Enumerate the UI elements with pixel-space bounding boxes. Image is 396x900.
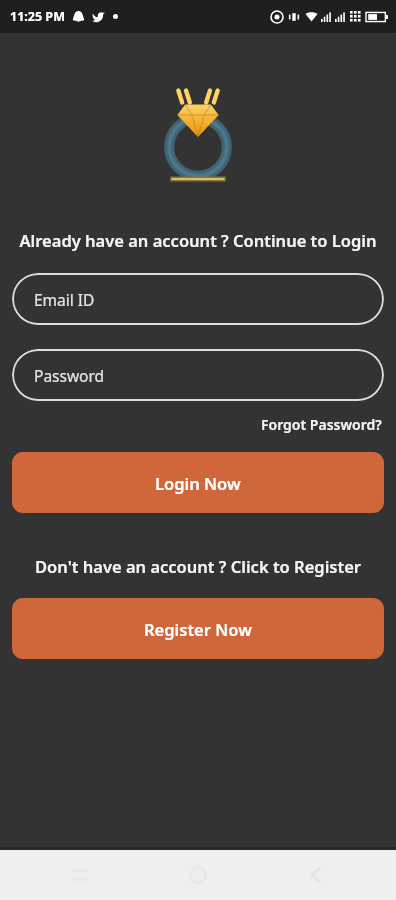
button[interactable]: Login Now: [12, 452, 384, 513]
staticText: Forgot Password?: [261, 415, 382, 434]
staticText: Password: [34, 365, 105, 386]
staticText: Already have an account ? Continue to Lo…: [8, 229, 388, 251]
staticText: Login Now: [155, 472, 241, 494]
button[interactable]: Forgot Password?: [259, 413, 384, 436]
staticText: Register Now: [144, 618, 252, 640]
button[interactable]: Register Now: [12, 598, 384, 659]
staticText: Don't have an account ? Click to Registe…: [8, 555, 388, 577]
staticText: 11:25 PM: [10, 8, 65, 25]
button[interactable]: Email ID: [12, 273, 384, 325]
button[interactable]: Password: [12, 349, 384, 401]
staticText: Email ID: [34, 289, 95, 310]
